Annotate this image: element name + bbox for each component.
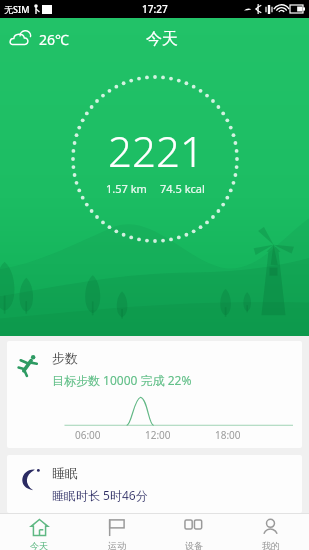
- button[interactable]: Profile: [232, 514, 309, 550]
- staticText: 我的: [262, 540, 280, 550]
- staticText: 26℃: [39, 30, 69, 49]
- staticText: 步数: [52, 350, 78, 366]
- staticText: 17:27: [142, 2, 168, 16]
- button[interactable]: Device: [155, 514, 232, 550]
- staticText: 今天: [30, 540, 48, 550]
- button[interactable]: Daily steps 2221: [70, 74, 240, 244]
- staticText: 今天: [146, 29, 178, 49]
- staticText: 睡眠时长 5时46分: [52, 487, 148, 503]
- staticText: 18:00: [215, 428, 241, 442]
- button[interactable]: Exercise: [78, 514, 155, 550]
- staticText: 2221: [108, 122, 204, 179]
- staticText: 目标步数 10000 完成 22%: [52, 372, 192, 388]
- button[interactable]: Today: [0, 514, 78, 550]
- staticText: 无SIM: [4, 3, 30, 15]
- staticText: 74.5 kcal: [160, 181, 205, 196]
- button[interactable]: 睡眠: [7, 455, 302, 513]
- staticText: 1.57 km: [106, 181, 147, 196]
- staticText: 运动: [108, 540, 126, 550]
- staticText: 设备: [185, 540, 203, 550]
- staticText: 06:00: [75, 428, 101, 442]
- staticText: 12:00: [145, 428, 171, 442]
- button[interactable]: 步数: [7, 341, 302, 448]
- staticText: 睡眠: [52, 465, 78, 481]
